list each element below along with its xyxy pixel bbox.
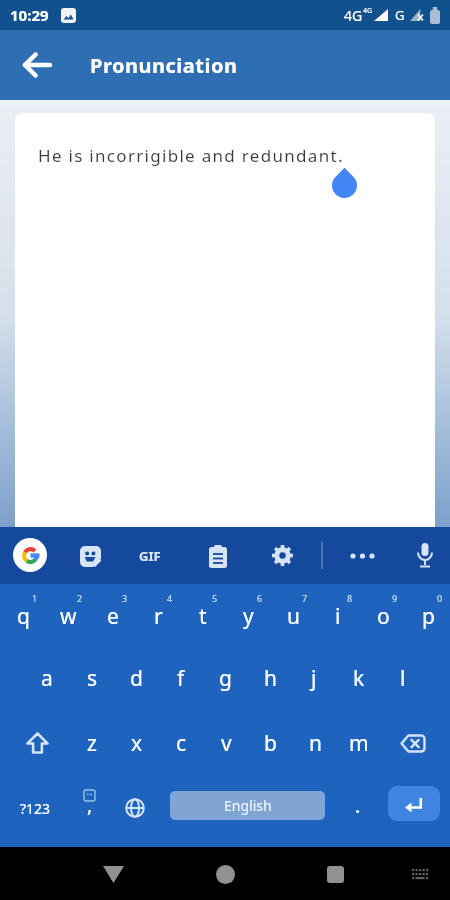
button[interactable]: k: [337, 649, 381, 707]
button[interactable]: [92, 853, 134, 895]
staticText: English: [224, 796, 272, 815]
staticText: p: [422, 602, 435, 631]
staticText: 6: [257, 592, 263, 604]
staticText: 7: [302, 592, 308, 604]
staticText: x: [131, 729, 143, 758]
button[interactable]: [388, 786, 440, 821]
button[interactable]: [314, 853, 356, 895]
button[interactable]: ?123: [8, 779, 62, 837]
button[interactable]: ,: [70, 779, 110, 837]
staticText: k: [353, 664, 365, 693]
button[interactable]: a: [25, 649, 69, 707]
button[interactable]: [115, 779, 155, 837]
button[interactable]: [10, 714, 64, 772]
button[interactable]: p: [406, 587, 450, 645]
staticText: 0: [437, 592, 443, 604]
button[interactable]: x: [115, 714, 159, 772]
button[interactable]: n: [293, 714, 337, 772]
staticText: ,: [87, 791, 93, 818]
staticText: c: [176, 729, 187, 758]
staticText: g: [219, 664, 232, 693]
button[interactable]: [204, 853, 246, 895]
staticText: z: [87, 729, 97, 758]
staticText: m: [349, 729, 369, 758]
button[interactable]: g: [203, 649, 247, 707]
button[interactable]: English: [170, 791, 325, 820]
button[interactable]: i: [316, 587, 360, 645]
button[interactable]: o: [361, 587, 405, 645]
button[interactable]: [348, 549, 376, 562]
staticText: i: [335, 602, 341, 631]
button[interactable]: y: [226, 587, 270, 645]
button[interactable]: [207, 543, 229, 569]
staticText: 5: [212, 592, 218, 604]
button[interactable]: [14, 42, 60, 88]
button[interactable]: h: [248, 649, 292, 707]
staticText: q: [17, 602, 30, 631]
staticText: 2: [77, 592, 83, 604]
staticText: u: [287, 602, 300, 631]
staticText: v: [221, 729, 232, 758]
button[interactable]: [13, 538, 47, 572]
button[interactable]: z: [70, 714, 114, 772]
staticText: d: [130, 664, 143, 693]
staticText: w: [60, 602, 77, 631]
staticText: G: [395, 6, 405, 24]
button[interactable]: [413, 541, 437, 571]
staticText: 8: [347, 592, 353, 604]
button[interactable]: m: [337, 714, 381, 772]
button[interactable]: r: [136, 587, 180, 645]
staticText: f: [177, 664, 185, 693]
staticText: 4G: [344, 6, 363, 25]
button[interactable]: f: [159, 649, 203, 707]
button[interactable]: .: [338, 779, 378, 837]
staticText: j: [311, 664, 317, 693]
button[interactable]: l: [381, 649, 425, 707]
button[interactable]: s: [70, 649, 114, 707]
staticText: ?123: [20, 799, 51, 818]
button[interactable]: c: [159, 714, 203, 772]
button[interactable]: d: [114, 649, 158, 707]
button[interactable]: [385, 714, 441, 772]
button[interactable]: j: [292, 649, 336, 707]
staticText: 1: [32, 592, 38, 604]
button[interactable]: He is incorrigible and redundant.: [15, 113, 435, 527]
staticText: y: [243, 602, 254, 631]
button[interactable]: b: [248, 714, 292, 772]
staticText: h: [264, 664, 277, 693]
button[interactable]: t: [181, 587, 225, 645]
button[interactable]: [78, 544, 102, 568]
staticText: b: [264, 729, 277, 758]
staticText: 4: [167, 592, 173, 604]
staticText: a: [41, 664, 53, 693]
staticText: t: [199, 602, 207, 631]
staticText: n: [309, 729, 322, 758]
button[interactable]: q: [1, 587, 45, 645]
staticText: He is incorrigible and redundant.: [38, 144, 344, 167]
button[interactable]: v: [204, 714, 248, 772]
staticText: 4G: [363, 6, 373, 16]
staticText: 3: [122, 592, 128, 604]
button[interactable]: w: [46, 587, 90, 645]
staticText: GIF: [139, 547, 161, 565]
staticText: o: [377, 602, 390, 631]
staticText: 10:29: [10, 5, 49, 25]
staticText: l: [400, 664, 406, 693]
staticText: .: [355, 792, 361, 819]
staticText: s: [87, 664, 98, 693]
staticText: Pronunciation: [90, 52, 238, 79]
staticText: 9: [392, 592, 398, 604]
staticText: e: [107, 602, 119, 631]
button[interactable]: [270, 543, 295, 568]
button[interactable]: [404, 859, 436, 889]
button[interactable]: u: [271, 587, 315, 645]
button[interactable]: GIF: [132, 541, 168, 571]
button[interactable]: e: [91, 587, 135, 645]
staticText: r: [154, 602, 163, 631]
